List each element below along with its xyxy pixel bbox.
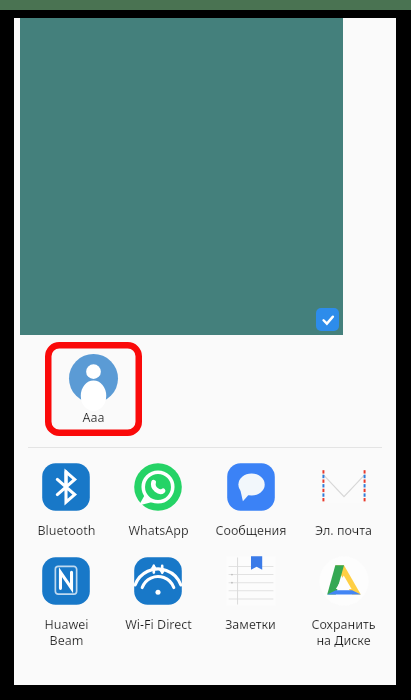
button[interactable]: Сохранить на Диске xyxy=(297,553,390,649)
staticText: Заметки xyxy=(225,616,276,633)
staticText: Wi-Fi Direct xyxy=(125,616,192,633)
staticText: Huawei Beam xyxy=(44,616,89,649)
button[interactable]: Aaa xyxy=(50,348,136,426)
staticText: Сообщения xyxy=(215,522,287,539)
button[interactable]: WhatsApp xyxy=(112,459,204,539)
button[interactable]: Заметки xyxy=(204,553,297,633)
staticText: WhatsApp xyxy=(128,522,189,539)
staticText: Aaa xyxy=(82,409,105,426)
staticText: Эл. почта xyxy=(315,522,372,539)
button[interactable]: Wi-Fi Direct xyxy=(112,553,204,633)
staticText: Bluetooth xyxy=(37,522,96,539)
button[interactable]: Сообщения xyxy=(204,459,297,539)
button[interactable]: Эл. почта xyxy=(297,459,390,539)
button[interactable]: Bluetooth xyxy=(20,459,112,539)
button[interactable]: Selected xyxy=(316,308,339,331)
staticText: Сохранить на Диске xyxy=(311,616,376,649)
button[interactable]: Huawei Beam xyxy=(20,553,112,649)
